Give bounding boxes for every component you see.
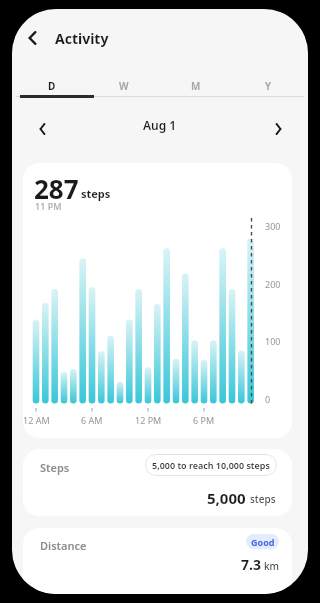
button[interactable]: Y xyxy=(232,77,304,95)
staticText: 5,000 xyxy=(207,488,246,508)
button[interactable]: 5,000 to reach 10,000 steps xyxy=(145,454,277,476)
staticText: 5,000 to reach 10,000 steps xyxy=(152,459,270,471)
staticText: 287 xyxy=(34,171,79,206)
staticText: steps xyxy=(81,186,111,201)
staticText: Y xyxy=(265,79,272,93)
staticText: 300 xyxy=(265,220,281,232)
staticText: Activity xyxy=(55,29,109,48)
staticText: 12 AM xyxy=(23,414,50,426)
button[interactable]: W xyxy=(88,77,160,95)
staticText: 0 xyxy=(265,393,271,405)
staticText: D xyxy=(48,79,56,93)
staticText: 100 xyxy=(265,335,281,347)
staticText: M xyxy=(191,79,201,93)
button[interactable] xyxy=(26,113,58,145)
button[interactable]: Steps xyxy=(23,449,292,516)
button[interactable]: Distance xyxy=(23,528,292,594)
staticText: Aug 1 xyxy=(143,117,177,133)
staticText: 6 AM xyxy=(81,414,103,426)
staticText: 200 xyxy=(265,278,281,290)
staticText: Steps xyxy=(40,460,70,475)
staticText: steps xyxy=(250,492,276,506)
staticText: 11 PM xyxy=(35,200,62,212)
staticText: Good xyxy=(251,536,275,548)
button[interactable]: Good xyxy=(246,534,279,549)
button[interactable] xyxy=(262,113,294,145)
staticText: 7.3 xyxy=(241,555,261,574)
staticText: km xyxy=(264,559,280,573)
staticText: 12 PM xyxy=(135,414,162,426)
button[interactable] xyxy=(14,20,50,56)
staticText: 6 PM xyxy=(193,414,215,426)
staticText: W xyxy=(119,79,129,93)
staticText: Distance xyxy=(40,538,87,553)
button[interactable]: D xyxy=(16,77,88,95)
button[interactable]: M xyxy=(160,77,232,95)
